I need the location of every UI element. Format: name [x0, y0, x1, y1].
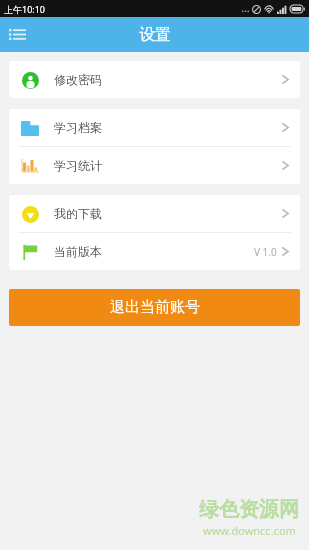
staticText: 绿色资源网	[199, 497, 299, 522]
button[interactable]: 学习统计	[9, 147, 300, 184]
button[interactable]: 学习档案	[9, 109, 300, 146]
staticText: 上午10:10	[4, 3, 46, 15]
staticText: 当前版本	[54, 244, 102, 259]
staticText: 我的下载	[54, 206, 102, 221]
staticText: 学习档案	[54, 120, 102, 135]
staticText: 设置	[139, 25, 171, 45]
staticText: www.downcc.com	[203, 523, 296, 538]
staticText: 修改密码	[54, 72, 102, 87]
button[interactable]: 当前版本	[9, 233, 300, 270]
button[interactable]: 我的下载	[9, 195, 300, 232]
staticText: V 1.0	[254, 245, 277, 259]
staticText: 退出当前账号	[110, 298, 200, 317]
button[interactable]: 修改密码	[9, 61, 300, 98]
button[interactable]: 退出当前账号	[9, 289, 300, 326]
staticText: 学习统计	[54, 158, 102, 173]
button[interactable]: Menu	[0, 17, 35, 52]
